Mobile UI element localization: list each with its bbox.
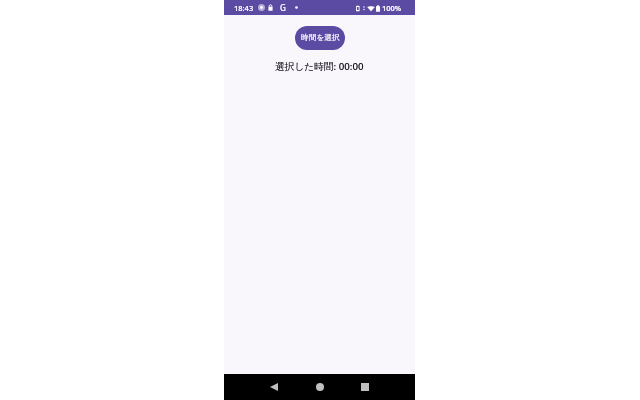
staticText: 選択した時間: 00:00 [275,60,364,73]
staticText: 時間を選択 [301,33,340,43]
button[interactable]: Recent apps [352,374,378,400]
staticText: 18:43 [234,3,254,13]
button[interactable]: 時間を選択 [295,26,345,50]
button[interactable]: Home [307,374,333,400]
staticText: 選択した時間: 00:00 [275,60,364,73]
staticText: 100% [382,3,402,13]
staticText: G [280,2,286,13]
button[interactable]: Back [261,374,287,400]
